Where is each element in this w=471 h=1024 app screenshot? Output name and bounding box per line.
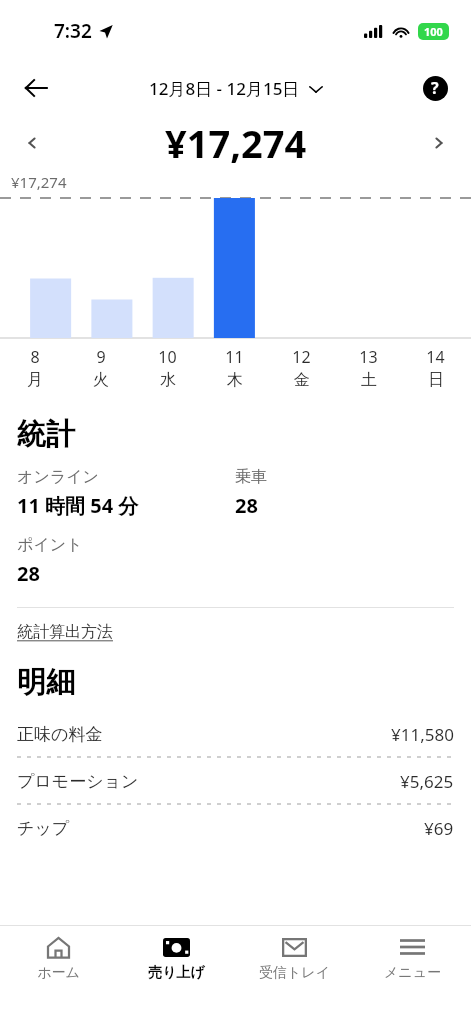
staticText: 月: [27, 370, 43, 390]
button[interactable]: メニュー: [353, 934, 471, 1024]
staticText: ¥17,274: [11, 172, 67, 192]
staticText: 正味の料金: [17, 724, 103, 745]
staticText: 8: [30, 346, 40, 368]
staticText: ホーム: [37, 964, 80, 982]
button[interactable]: Next week: [419, 123, 459, 163]
staticText: 12月8日 - 12月15日: [149, 77, 300, 100]
staticText: 9: [96, 346, 106, 368]
staticText: チップ: [17, 818, 70, 839]
button[interactable]: 受信トレイ: [235, 934, 353, 1024]
staticText: プロモーション: [17, 771, 139, 792]
staticText: 13: [359, 346, 378, 368]
staticText: 統計算出方法: [17, 622, 113, 642]
staticText: 火: [93, 370, 109, 390]
button[interactable]: Help: [413, 66, 457, 110]
staticText: 12: [292, 346, 311, 368]
staticText: 100: [424, 24, 443, 39]
staticText: 受信トレイ: [259, 964, 330, 982]
button[interactable]: Back: [14, 66, 58, 110]
button[interactable]: 統計算出方法: [17, 622, 113, 642]
staticText: ¥17,274: [165, 117, 307, 169]
staticText: 水: [160, 370, 176, 390]
button[interactable]: 12月8日 - 12月15日: [149, 77, 323, 100]
staticText: 7:32: [54, 18, 92, 44]
staticText: 11 時間 54 分: [17, 492, 139, 519]
button[interactable]: プロモーション: [17, 758, 454, 804]
staticText: 乗車: [235, 467, 267, 487]
staticText: オンライン: [17, 467, 99, 487]
staticText: 11: [225, 346, 244, 368]
button[interactable]: ホーム: [0, 934, 117, 1024]
button[interactable]: チップ: [17, 805, 454, 851]
button[interactable]: Previous week: [12, 123, 52, 163]
staticText: 売り上げ: [148, 964, 205, 982]
staticText: ポイント: [17, 535, 83, 555]
button[interactable]: 正味の料金: [17, 711, 454, 757]
staticText: 明細: [17, 664, 75, 701]
staticText: ¥69: [424, 817, 454, 840]
staticText: 10: [158, 346, 177, 368]
staticText: ?: [431, 77, 439, 99]
staticText: ¥11,580: [391, 723, 454, 746]
staticText: 14: [426, 346, 445, 368]
staticText: 木: [227, 370, 243, 390]
staticText: 28: [17, 560, 40, 587]
staticText: 28: [235, 492, 258, 519]
staticText: 土: [361, 370, 377, 390]
staticText: メニュー: [384, 964, 441, 982]
staticText: ¥5,625: [400, 770, 454, 793]
staticText: 統計: [17, 416, 75, 453]
staticText: 日: [428, 370, 444, 390]
button[interactable]: 売り上げ: [117, 934, 235, 1024]
staticText: 金: [294, 370, 310, 390]
